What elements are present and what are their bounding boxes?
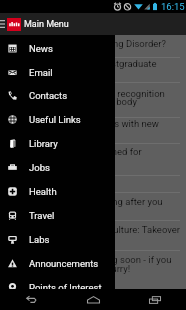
staticText: want to apply, hurry!: [46, 263, 131, 274]
button[interactable]: [0, 192, 186, 220]
button[interactable]: Jobs: [0, 155, 115, 179]
staticText: Do You Have an Eating Disorder?: [28, 38, 167, 49]
staticText: Health: [29, 186, 57, 197]
button[interactable]: Travel: [0, 203, 115, 227]
staticText: Contacts: [29, 90, 68, 101]
staticText: Student Life Culture: Takeover: [54, 224, 181, 235]
staticText: Deadline coming soon - if you: [47, 254, 172, 265]
button[interactable]: [0, 175, 186, 192]
button[interactable]: [0, 35, 186, 57]
button[interactable]: [0, 220, 186, 251]
staticText: New MSc and Postgraduate: [39, 58, 157, 69]
staticText: Labs: [29, 234, 50, 245]
staticText: Library: [29, 138, 58, 149]
button[interactable]: Useful Links: [0, 107, 115, 131]
staticText: Main Menu: [24, 19, 69, 30]
button[interactable]: Labs: [0, 227, 115, 251]
staticText: Announcements: [29, 258, 99, 269]
button[interactable]: App logo: [7, 18, 21, 31]
staticText: News: [29, 43, 53, 54]
staticText: Scientists use face recognition: [35, 88, 165, 99]
staticText: to map the human body: [37, 96, 137, 107]
button[interactable]: [0, 57, 186, 83]
button[interactable]: Contacts: [0, 83, 115, 107]
button[interactable]: [0, 143, 186, 175]
staticText: Jobs: [29, 162, 50, 173]
button[interactable]: Points of Interest: [0, 275, 115, 289]
button[interactable]: [0, 82, 186, 117]
button[interactable]: Announcements: [0, 251, 115, 275]
staticText: Applications opened for: [41, 146, 142, 157]
staticText: Points of Interest: [29, 282, 102, 289]
button[interactable]: [0, 250, 186, 289]
button[interactable]: Library: [0, 131, 115, 155]
staticText: 16:15: [161, 1, 185, 12]
button[interactable]: Recent apps: [139, 289, 171, 310]
button[interactable]: Email: [0, 60, 115, 84]
button[interactable]: Health: [0, 179, 115, 203]
button[interactable]: [0, 117, 186, 143]
button[interactable]: Open navigation drawer: [0, 13, 6, 35]
button[interactable]: Home: [77, 289, 109, 310]
button[interactable]: Back: [15, 289, 47, 310]
staticText: Useful Links: [29, 114, 81, 125]
staticText: Email: [29, 67, 53, 78]
staticText: Library opens with new: [62, 118, 159, 129]
staticText: New study: looking after you: [43, 196, 163, 207]
staticText: Travel: [29, 210, 55, 221]
button[interactable]: News: [0, 36, 115, 60]
